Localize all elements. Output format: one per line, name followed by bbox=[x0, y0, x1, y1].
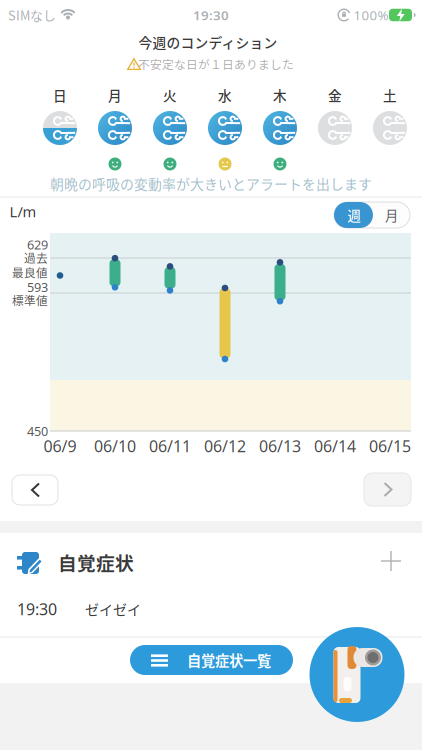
staticText: 06/13 bbox=[259, 435, 301, 457]
staticText: 週 bbox=[347, 205, 360, 225]
staticText: 100% bbox=[353, 6, 388, 24]
button[interactable] bbox=[309, 627, 404, 722]
staticText: 火 bbox=[163, 85, 177, 105]
button[interactable] bbox=[364, 473, 411, 506]
button[interactable] bbox=[380, 550, 402, 572]
staticText: 標準値 bbox=[12, 292, 48, 308]
staticText: 19:30 bbox=[193, 6, 229, 24]
button[interactable]: 週 bbox=[334, 202, 373, 228]
staticText: 629 bbox=[27, 236, 48, 253]
staticText: ゼイゼイ bbox=[85, 599, 141, 619]
staticText: 土 bbox=[383, 85, 397, 105]
staticText: 450 bbox=[27, 422, 48, 440]
staticText: 自覚症状 bbox=[58, 548, 134, 575]
staticText: 06/10 bbox=[94, 435, 136, 457]
button[interactable]: 自覚症状一覧 bbox=[130, 645, 293, 675]
staticText: 水 bbox=[218, 85, 232, 105]
staticText: 06/14 bbox=[314, 435, 356, 457]
staticText: 朝晩の呼吸の変動率が大きいとアラートを出します bbox=[50, 173, 372, 194]
button[interactable]: 月 bbox=[373, 202, 410, 228]
staticText: 593 bbox=[27, 278, 48, 296]
staticText: 06/15 bbox=[369, 435, 411, 457]
staticText: 今週のコンディション bbox=[138, 32, 277, 52]
staticText: 06/12 bbox=[204, 435, 246, 457]
staticText: 06/11 bbox=[149, 435, 191, 457]
staticText: 金 bbox=[328, 85, 342, 105]
staticText: 19:30 bbox=[17, 598, 57, 620]
staticText: 自覚症状一覧 bbox=[187, 650, 271, 670]
staticText: 木 bbox=[273, 85, 287, 105]
staticText: 06/9 bbox=[43, 435, 76, 457]
staticText: SIMなし bbox=[8, 6, 56, 24]
button[interactable] bbox=[12, 475, 58, 505]
staticText: 不安定な日が１日ありました bbox=[138, 55, 294, 72]
staticText: 過去 bbox=[24, 249, 48, 266]
staticText: 最良値 bbox=[12, 264, 48, 281]
staticText: 月 bbox=[108, 85, 122, 105]
staticText: 日 bbox=[53, 85, 67, 105]
staticText: L/m bbox=[9, 202, 36, 221]
staticText: 月 bbox=[385, 205, 398, 225]
